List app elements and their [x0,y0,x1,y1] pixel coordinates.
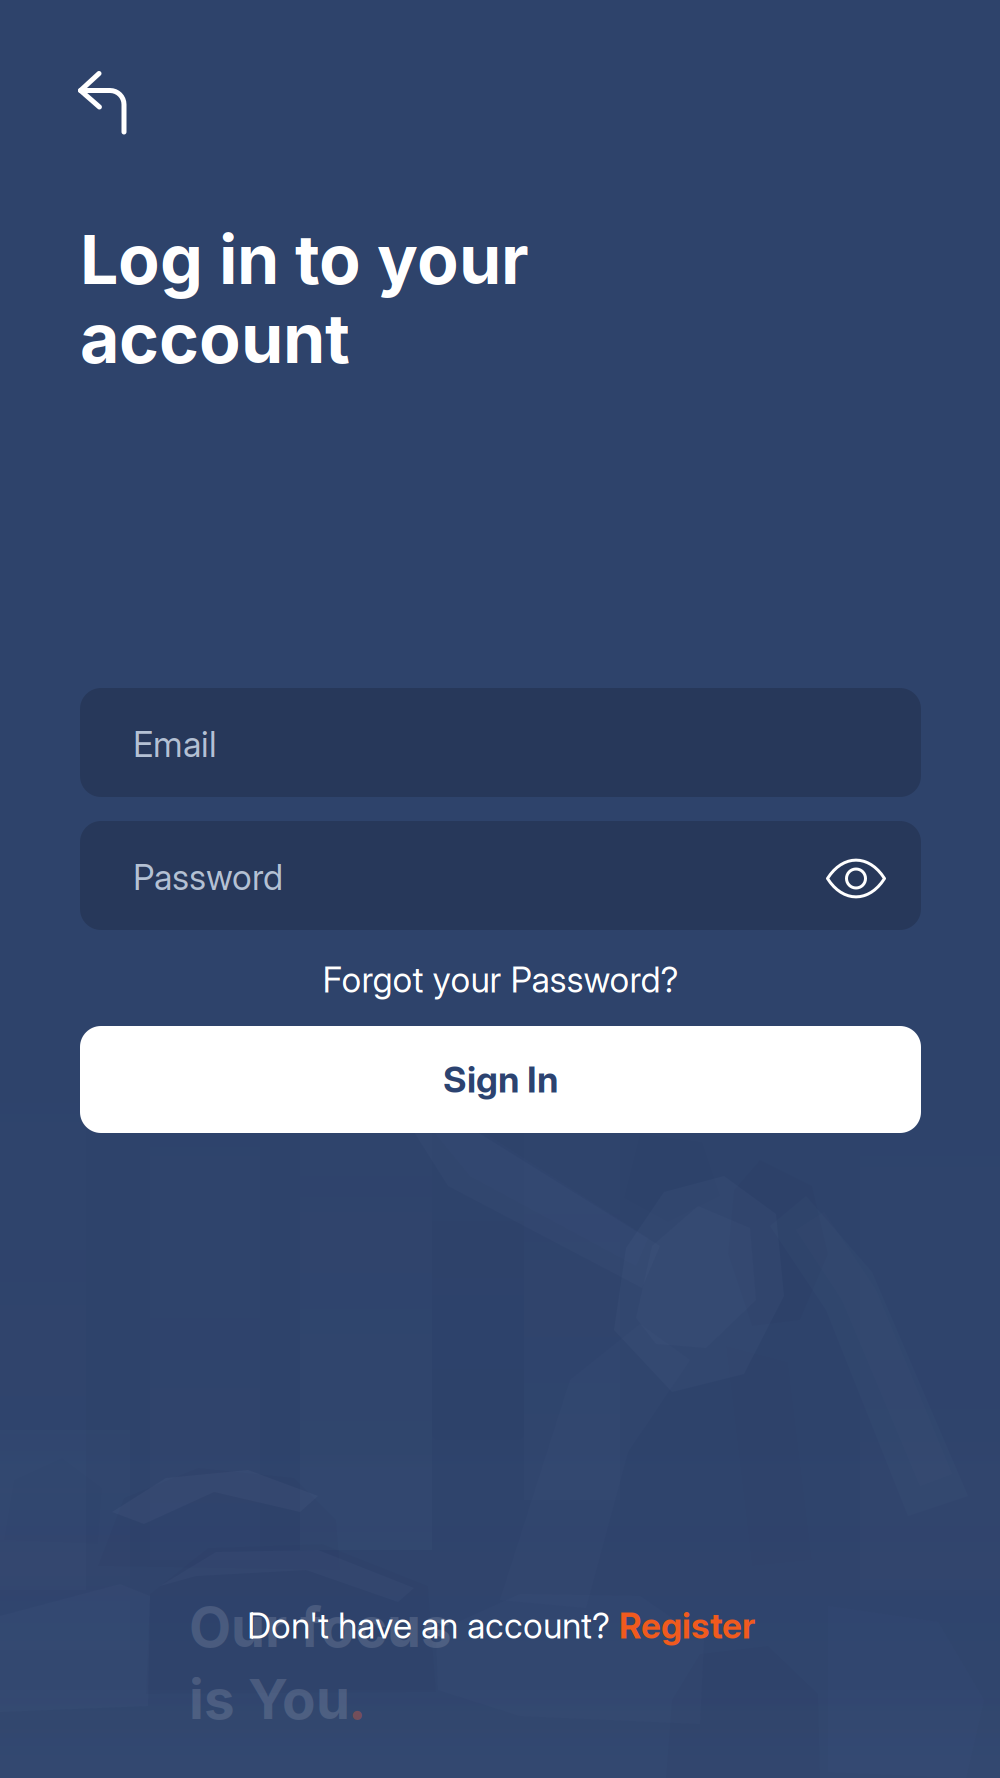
staticText: Password [133,856,283,898]
staticText: Forgot your Password? [322,959,678,1001]
staticText: is You [189,1666,350,1732]
staticText: Register [619,1605,755,1647]
staticText: Email [133,723,217,765]
staticText: account [80,297,350,379]
button[interactable]: Show password [824,843,888,907]
button[interactable]: Sign In [80,1026,921,1133]
staticText: Sign In [443,1058,558,1101]
button[interactable]: Back [62,46,154,154]
staticText: . [348,1666,366,1732]
button[interactable]: Don't have an account? [247,1605,755,1647]
button[interactable]: Forgot your Password? [80,952,921,1008]
staticText: Log in to your [80,218,529,300]
staticText: Our focus [189,1594,452,1660]
staticText: Don't have an account? [247,1605,619,1647]
